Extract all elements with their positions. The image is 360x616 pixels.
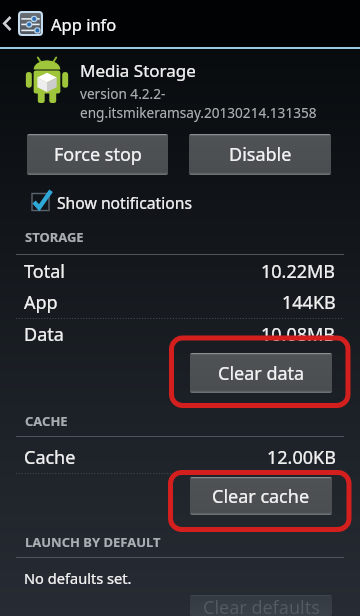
staticText: Disable xyxy=(229,142,292,167)
staticText: Total xyxy=(24,259,65,284)
button[interactable]: Force stop xyxy=(27,134,168,175)
staticText: LAUNCH BY DEFAULT xyxy=(25,533,161,551)
button[interactable]: Disable xyxy=(189,134,331,175)
staticText: Force stop xyxy=(54,142,142,167)
button[interactable]: Clear cache xyxy=(190,477,332,515)
button[interactable]: Show notifications xyxy=(26,191,192,213)
staticText: Show notifications xyxy=(57,192,192,213)
staticText: No defaults set. xyxy=(24,568,132,588)
staticText: 144KB xyxy=(282,290,336,315)
button[interactable]: Back to App info xyxy=(3,0,45,47)
staticText: Clear defaults xyxy=(203,595,320,616)
button[interactable]: Clear data xyxy=(190,353,332,393)
staticText: 12.00KB xyxy=(267,445,336,470)
staticText: Data xyxy=(24,322,64,347)
staticText: Cache xyxy=(24,445,76,470)
staticText: CACHE xyxy=(25,412,68,430)
staticText: Clear data xyxy=(218,361,305,386)
staticText: eng.itsmikeramsay.20130214.131358 xyxy=(80,103,317,122)
staticText: version 4.2.2- xyxy=(80,84,166,103)
staticText: Clear cache xyxy=(212,484,310,509)
staticText: 10.22MB xyxy=(261,259,336,284)
staticText: App info xyxy=(51,13,117,35)
staticText: STORAGE xyxy=(25,228,84,246)
staticText: App xyxy=(24,290,58,315)
staticText: 10.08MB xyxy=(261,322,336,347)
staticText: Media Storage xyxy=(80,59,196,82)
button[interactable]: Clear defaults xyxy=(190,595,332,616)
